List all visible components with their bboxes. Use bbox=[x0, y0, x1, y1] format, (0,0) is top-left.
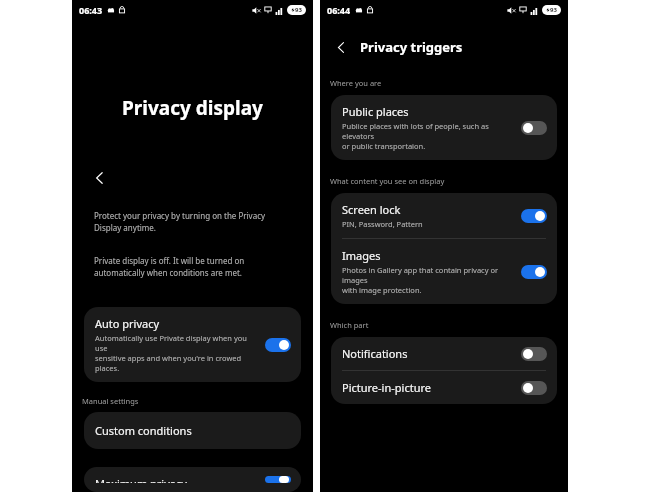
staticText: Automatically use Private display when y… bbox=[95, 333, 257, 373]
button[interactable]: Back bbox=[332, 38, 350, 56]
button[interactable]: Custom conditions bbox=[84, 412, 301, 449]
staticText: Privacy display bbox=[122, 95, 263, 121]
button[interactable]: Images bbox=[521, 265, 547, 279]
staticText: Auto privacy bbox=[95, 316, 160, 331]
staticText: Publice places with lots of people, such… bbox=[342, 121, 513, 151]
staticText: Notifications bbox=[342, 346, 408, 361]
staticText: Public places bbox=[342, 104, 409, 119]
staticText: Private display is off. It will be turne… bbox=[94, 255, 291, 279]
button[interactable]: Maximum privacy bbox=[265, 476, 291, 483]
button[interactable]: Public places bbox=[331, 95, 557, 160]
staticText: 06:44 bbox=[327, 4, 351, 16]
button[interactable]: Auto privacy bbox=[265, 338, 291, 352]
staticText: Where you are bbox=[330, 78, 382, 88]
button[interactable]: Public places bbox=[521, 121, 547, 135]
button[interactable]: Back bbox=[90, 168, 110, 188]
button[interactable]: Screen lock bbox=[521, 209, 547, 223]
button[interactable]: Picture-in-picture bbox=[331, 371, 557, 404]
button[interactable]: Picture-in-picture bbox=[521, 381, 547, 395]
staticText: Photos in Gallery app that contain priva… bbox=[342, 265, 513, 295]
staticText: 06:43 bbox=[79, 4, 103, 16]
button[interactable]: Notifications bbox=[521, 347, 547, 361]
staticText: Picture-in-picture bbox=[342, 380, 431, 395]
staticText: Screen lock bbox=[342, 202, 401, 217]
staticText: Manual settings bbox=[82, 396, 139, 406]
staticText: 93 bbox=[550, 6, 557, 14]
staticText: PIN, Password, Pattern bbox=[342, 219, 423, 229]
staticText: 93 bbox=[295, 6, 302, 14]
button[interactable]: Images bbox=[331, 239, 557, 304]
button[interactable]: Notifications bbox=[331, 337, 557, 370]
button[interactable]: Auto privacy bbox=[84, 307, 301, 382]
button[interactable]: Maximum privacy bbox=[84, 467, 301, 492]
staticText: Images bbox=[342, 248, 381, 263]
button[interactable]: Screen lock bbox=[331, 193, 557, 238]
staticText: What content you see on display bbox=[330, 176, 445, 186]
staticText: Protect your privacy by turning on the P… bbox=[94, 210, 291, 234]
staticText: Which part bbox=[330, 320, 369, 330]
staticText: Custom conditions bbox=[95, 423, 192, 438]
staticText: Privacy triggers bbox=[360, 38, 463, 56]
staticText: Maximum privacy bbox=[95, 476, 187, 483]
